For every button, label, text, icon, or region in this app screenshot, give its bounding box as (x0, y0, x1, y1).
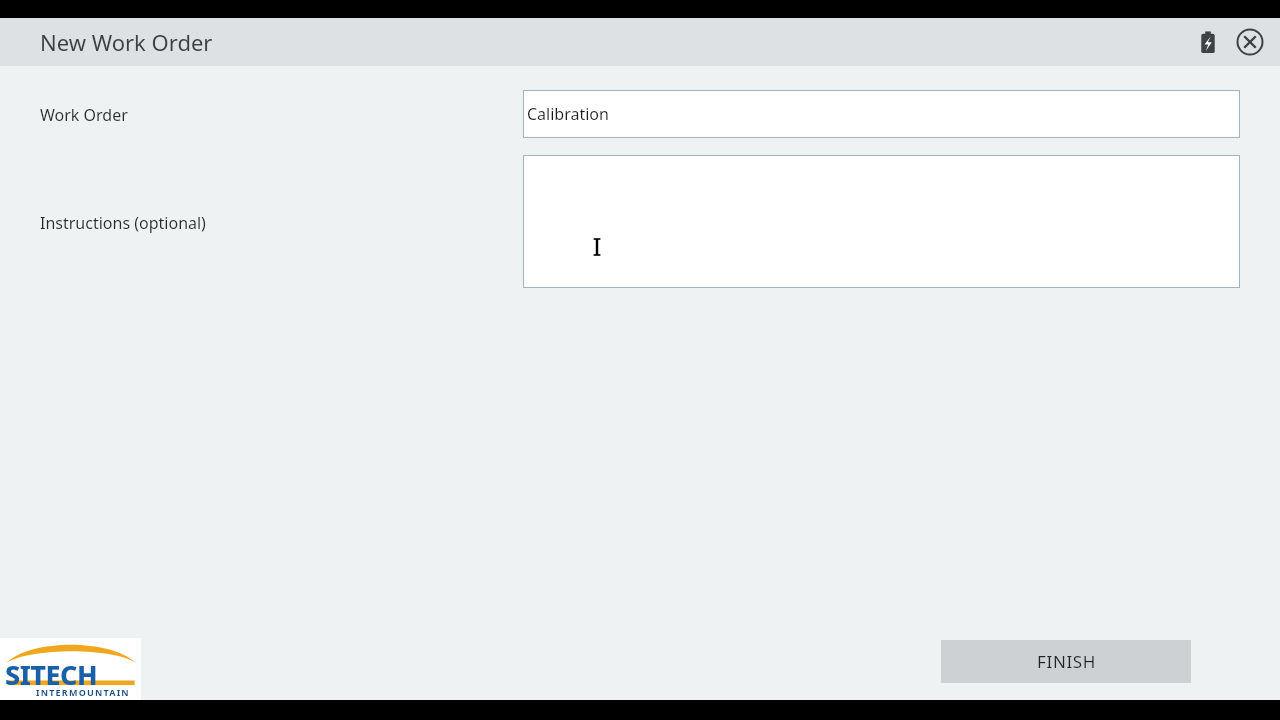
staticText: New Work Order (40, 27, 213, 57)
button[interactable]: Battery charging (1188, 22, 1228, 62)
staticText: SITECH (5, 656, 98, 693)
button[interactable]: Close (1228, 20, 1272, 64)
staticText: Calibration (527, 103, 609, 125)
staticText: Work Order (40, 104, 128, 126)
button[interactable]: Calibration (523, 90, 1240, 138)
staticText: FINISH (1037, 650, 1096, 673)
button[interactable]: FINISH (941, 640, 1191, 683)
staticText: INTERMOUNTAIN (36, 686, 130, 698)
staticText: Instructions (optional) (40, 212, 206, 234)
button[interactable] (523, 155, 1240, 288)
